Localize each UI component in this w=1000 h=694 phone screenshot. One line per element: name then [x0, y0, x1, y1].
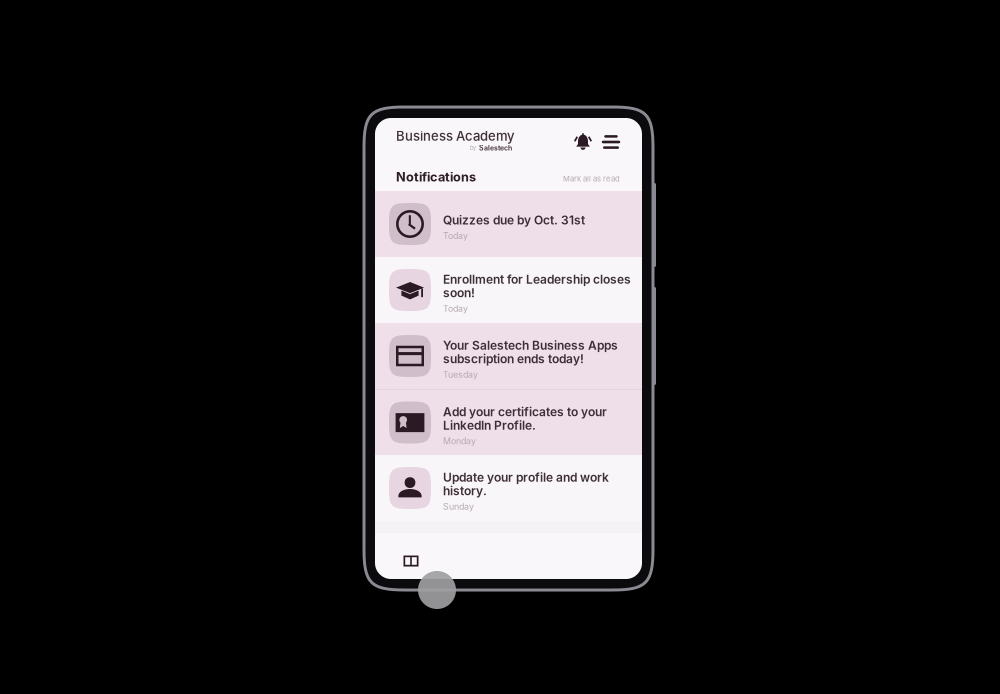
staticText: Your Salestech Business Apps subscriptio… — [443, 338, 618, 366]
button[interactable]: Enrollment for Leadership closes soon! — [375, 257, 642, 323]
staticText: Update your profile and work history. — [443, 470, 609, 498]
button[interactable]: Your Salestech Business Apps subscriptio… — [375, 323, 642, 389]
staticText: Today — [443, 230, 468, 241]
staticText: Quizzes due by Oct. 31st — [443, 213, 585, 227]
button[interactable]: Quizzes due by Oct. 31st — [375, 191, 642, 257]
staticText: Salestech — [479, 144, 512, 152]
staticText: Today — [443, 303, 468, 314]
staticText: Monday — [443, 436, 476, 446]
staticText: Notifications — [396, 169, 476, 185]
staticText: Sunday — [443, 501, 474, 512]
button[interactable]: Notifications — [572, 129, 594, 155]
button[interactable]: Add your certificates to your LinkedIn P… — [375, 390, 642, 455]
staticText: Enrollment for Leadership closes soon! — [443, 272, 631, 300]
staticText: Mark all as read — [563, 174, 620, 183]
staticText: Tuesday — [443, 369, 478, 380]
button[interactable]: Library — [400, 552, 422, 570]
button[interactable]: Menu — [601, 129, 621, 155]
staticText: Add your certificates to your LinkedIn P… — [443, 405, 607, 433]
button[interactable]: Mark all as read — [563, 174, 620, 183]
staticText: by — [470, 145, 476, 151]
button[interactable]: Update your profile and work history. — [375, 455, 642, 521]
staticText: Business Academy — [396, 128, 515, 144]
